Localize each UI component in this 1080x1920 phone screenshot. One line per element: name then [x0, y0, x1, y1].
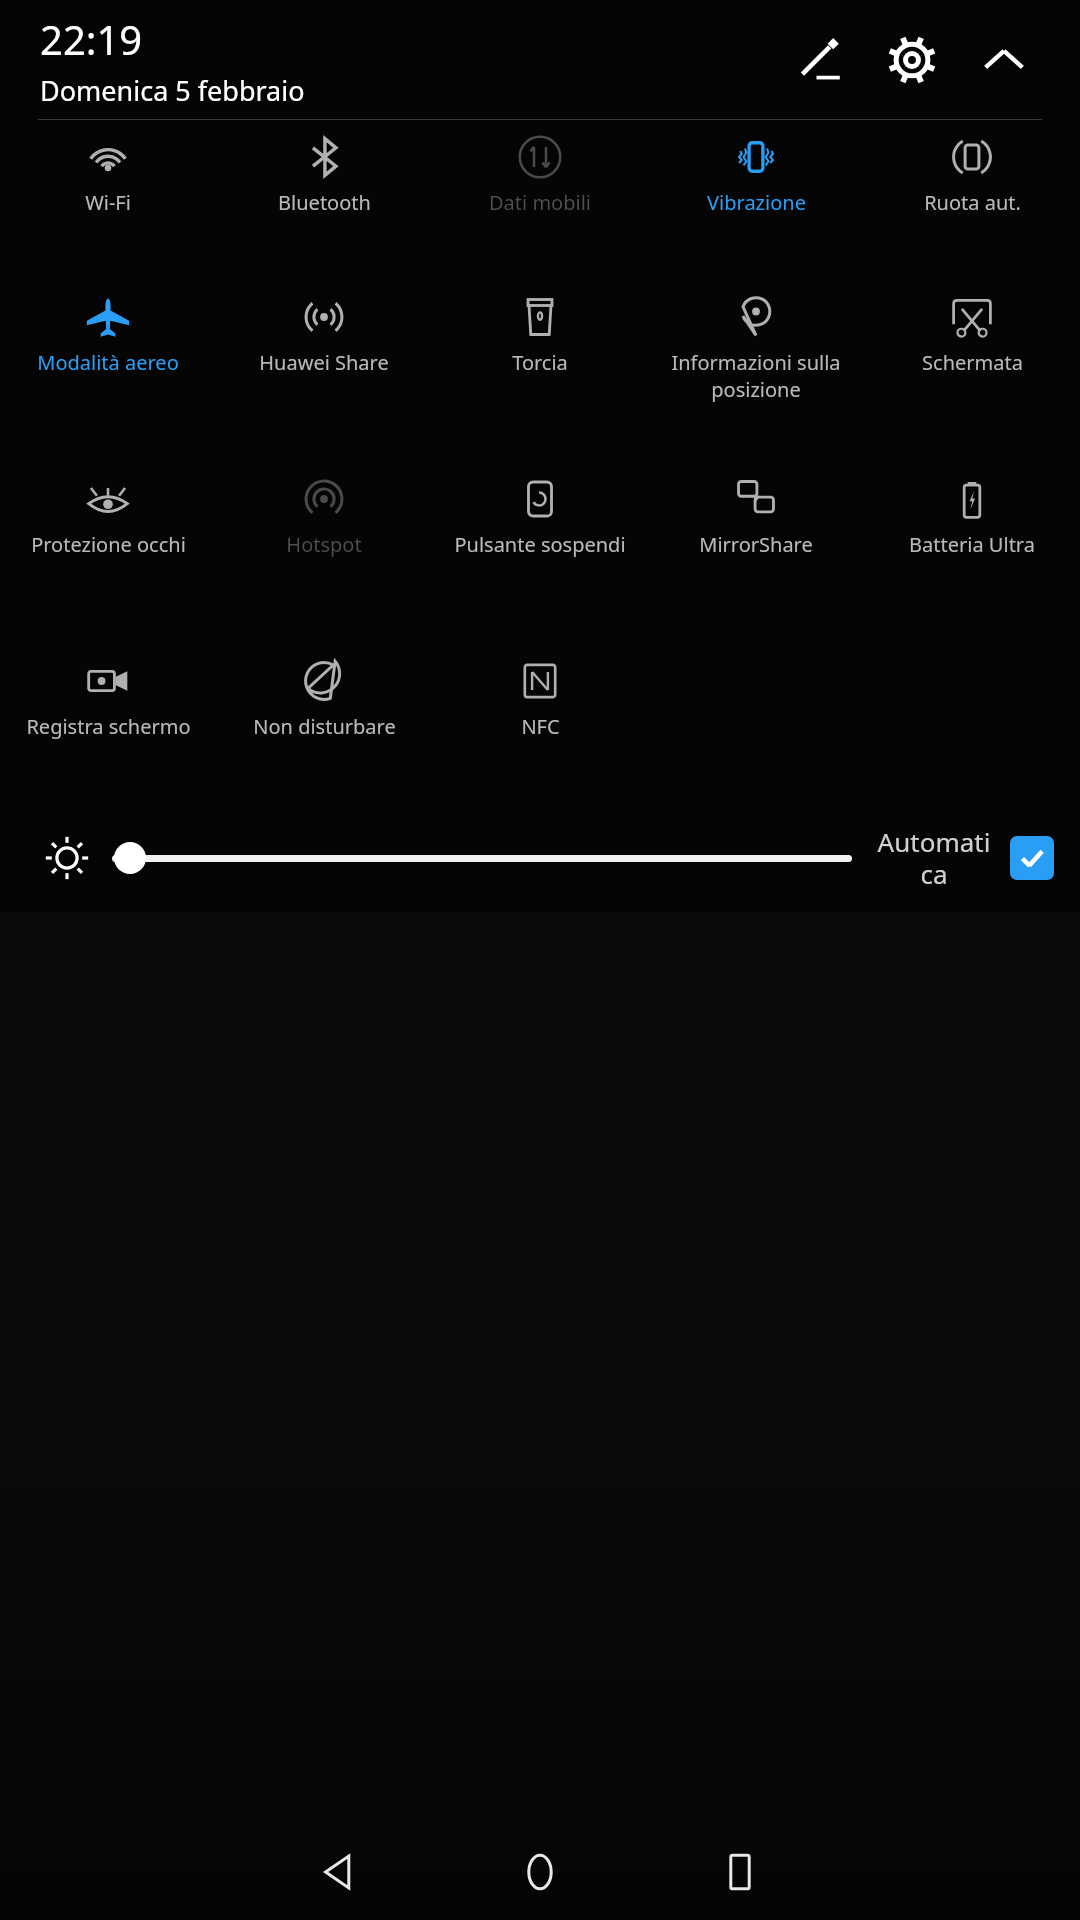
button[interactable]: Settings	[866, 14, 958, 106]
staticText: Automatica	[874, 824, 994, 892]
button[interactable]: Schermata	[864, 280, 1080, 376]
staticText: Wi-Fi	[85, 189, 131, 216]
button[interactable]: Home	[440, 1824, 640, 1920]
button[interactable]: Modalità aereo	[0, 280, 216, 376]
staticText: NFC	[521, 713, 560, 740]
button[interactable]: Huawei Share	[216, 280, 432, 376]
staticText: Modalità aereo	[37, 349, 179, 376]
staticText: Protezione occhi	[31, 531, 186, 558]
button[interactable]: Vibrazione	[648, 120, 864, 216]
staticText: Torcia	[512, 349, 568, 376]
button[interactable]: Dati mobili	[432, 120, 648, 216]
button[interactable]: Collapse	[958, 14, 1050, 106]
button[interactable]: Batteria Ultra	[864, 462, 1080, 558]
staticText: Registra schermo	[26, 713, 191, 740]
staticText: Schermata	[922, 349, 1023, 376]
staticText: 22:19	[40, 12, 143, 66]
staticText: Huawei Share	[259, 349, 389, 376]
button[interactable]: Informazioni sulla posizione	[648, 280, 864, 403]
button[interactable]: Automatic brightness	[1010, 836, 1054, 880]
button[interactable]: Registra schermo	[0, 644, 216, 740]
staticText: Informazioni sulla posizione	[648, 349, 864, 403]
button[interactable]: Protezione occhi	[0, 462, 216, 558]
button[interactable]: Ruota aut.	[864, 120, 1080, 216]
staticText: Pulsante sospendi	[454, 531, 626, 558]
button[interactable]: Pulsante sospendi	[432, 462, 648, 558]
button[interactable]: Recents	[640, 1824, 840, 1920]
staticText: Vibrazione	[707, 189, 806, 216]
button[interactable]: Torcia	[432, 280, 648, 376]
button[interactable]: MirrorShare	[648, 462, 864, 558]
staticText: Ruota aut.	[924, 189, 1021, 216]
staticText: Non disturbare	[253, 713, 396, 740]
staticText: Hotspot	[286, 531, 362, 558]
staticText: MirrorShare	[699, 531, 813, 558]
button[interactable]: Bluetooth	[216, 120, 432, 216]
staticText: Bluetooth	[278, 189, 371, 216]
staticText: Domenica 5 febbraio	[40, 72, 305, 109]
button[interactable]: Hotspot	[216, 462, 432, 558]
button[interactable]: Wi-Fi	[0, 120, 216, 216]
button[interactable]: Brightness	[112, 836, 852, 880]
button[interactable]: NFC	[432, 644, 648, 740]
staticText: Batteria Ultra	[909, 531, 1035, 558]
staticText: Dati mobili	[489, 189, 591, 216]
button[interactable]: Back	[240, 1824, 440, 1920]
button[interactable]: Edit	[774, 14, 866, 106]
button[interactable]: Non disturbare	[216, 644, 432, 740]
